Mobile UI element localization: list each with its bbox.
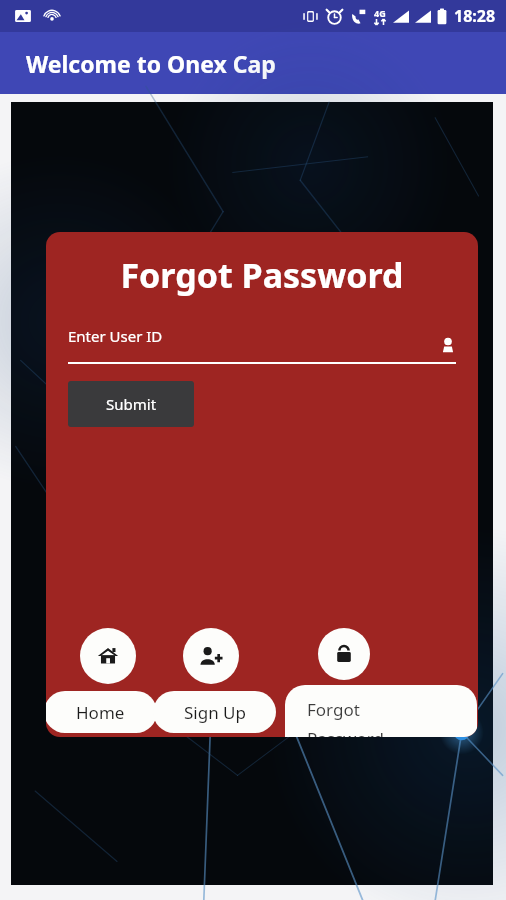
button[interactable]: Sign Up xyxy=(153,691,276,733)
staticText: Forgot Password xyxy=(46,252,478,298)
staticText: Password xyxy=(307,727,384,737)
button[interactable]: Forgot Password xyxy=(318,628,370,680)
staticText: Welcome to Onex Cap xyxy=(26,48,276,79)
staticText: 4G xyxy=(374,7,386,19)
staticText: Sign Up xyxy=(184,701,246,724)
button[interactable]: Submit xyxy=(68,381,194,427)
staticText: Forgot xyxy=(307,698,360,721)
staticText: Home xyxy=(76,701,125,724)
staticText: 18:28 xyxy=(454,5,496,27)
button[interactable]: Home xyxy=(80,628,136,684)
button[interactable]: Home xyxy=(46,691,157,733)
button[interactable]: Forgot xyxy=(285,685,477,737)
staticText: Enter User ID xyxy=(68,326,163,346)
button[interactable]: Sign Up xyxy=(183,628,239,684)
staticText: Submit xyxy=(106,394,157,414)
